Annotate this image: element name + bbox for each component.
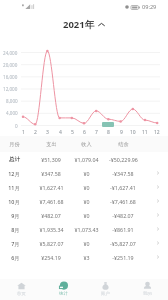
staticText: 8,000	[6, 98, 18, 104]
staticText: 1	[22, 129, 25, 136]
staticText: 3	[46, 129, 49, 136]
staticText: 12月	[8, 170, 20, 177]
staticText: 月份	[9, 141, 20, 148]
staticText: 20,000	[3, 62, 18, 68]
staticText: ¥0	[83, 198, 90, 205]
staticText: -¥251.19	[112, 254, 134, 261]
staticText: -¥861.91	[112, 226, 134, 233]
button[interactable]: 7月	[0, 236, 168, 250]
button[interactable]: 总计	[0, 152, 168, 166]
staticText: 6月	[11, 254, 20, 261]
button[interactable]: 12月	[0, 166, 168, 180]
staticText: ¥0	[83, 212, 90, 219]
staticText: 12	[154, 129, 160, 136]
staticText: 12,000	[3, 86, 18, 92]
staticText: -¥7,461.68	[110, 198, 136, 205]
staticText: 8	[107, 129, 110, 136]
staticText: ¥1,935.34	[39, 226, 64, 233]
staticText: ¥1,073.43	[74, 226, 99, 233]
staticText: 9	[120, 129, 123, 136]
staticText: ¥1,079.04	[74, 156, 99, 163]
staticText: 10月	[8, 198, 20, 205]
staticText: ¥0	[83, 240, 90, 247]
staticText: ¥0	[83, 170, 90, 177]
staticText: ¥0	[83, 184, 90, 191]
button[interactable]: 我的	[126, 279, 168, 300]
staticText: 收入	[81, 141, 92, 148]
staticText: 7月	[11, 240, 20, 247]
staticText: 24,000	[3, 50, 18, 56]
staticText: 5	[71, 129, 74, 136]
staticText: 9月	[11, 212, 20, 219]
staticText: ¥51,309	[41, 156, 61, 163]
staticText: 10	[130, 129, 136, 136]
staticText: -¥50,229.96	[109, 156, 138, 163]
staticText: 首页	[17, 291, 26, 297]
staticText: 6	[83, 129, 86, 136]
staticText: ¥1,627.41	[39, 184, 64, 191]
button[interactable]: 9月	[0, 208, 168, 222]
button[interactable]: 10月	[0, 194, 168, 208]
staticText: ¥254.19	[41, 254, 61, 261]
staticText: ¥347.58	[41, 170, 61, 177]
button[interactable]: 8月	[0, 222, 168, 236]
staticText: 2	[34, 129, 37, 136]
button[interactable]: 2021年	[59, 16, 109, 33]
staticText: 结余	[118, 141, 129, 148]
staticText: 09:29	[142, 3, 157, 11]
staticText: 7	[95, 129, 98, 136]
button[interactable]: 6月	[0, 250, 168, 264]
staticText: 2021年	[63, 18, 95, 31]
staticText: ¥482.07	[41, 212, 61, 219]
staticText: 16,000	[3, 74, 18, 80]
staticText: -¥347.58	[112, 170, 134, 177]
staticText: ¥7,461.68	[39, 198, 64, 205]
button[interactable]: 账户	[84, 279, 126, 300]
staticText: 11	[142, 129, 148, 136]
staticText: 我的	[143, 291, 152, 297]
staticText: -¥482.07	[112, 212, 134, 219]
staticText: 统计	[59, 291, 68, 297]
button[interactable]: 统计	[42, 279, 84, 300]
staticText: 8月	[11, 226, 20, 233]
button[interactable]: 首页	[0, 279, 42, 300]
staticText: 账户	[101, 291, 110, 297]
staticText: 4,000	[6, 110, 18, 116]
staticText: 4	[59, 129, 62, 136]
staticText: 0	[15, 123, 18, 129]
button[interactable]: 11月	[0, 180, 168, 194]
staticText: -¥5,827.07	[110, 240, 136, 247]
staticText: 总计	[9, 156, 20, 163]
staticText: ¥3	[83, 254, 90, 261]
staticText: 11月	[8, 184, 20, 191]
staticText: 支出	[46, 141, 57, 148]
staticText: -¥1,627.41	[110, 184, 136, 191]
staticText: ¥5,827.07	[39, 240, 64, 247]
